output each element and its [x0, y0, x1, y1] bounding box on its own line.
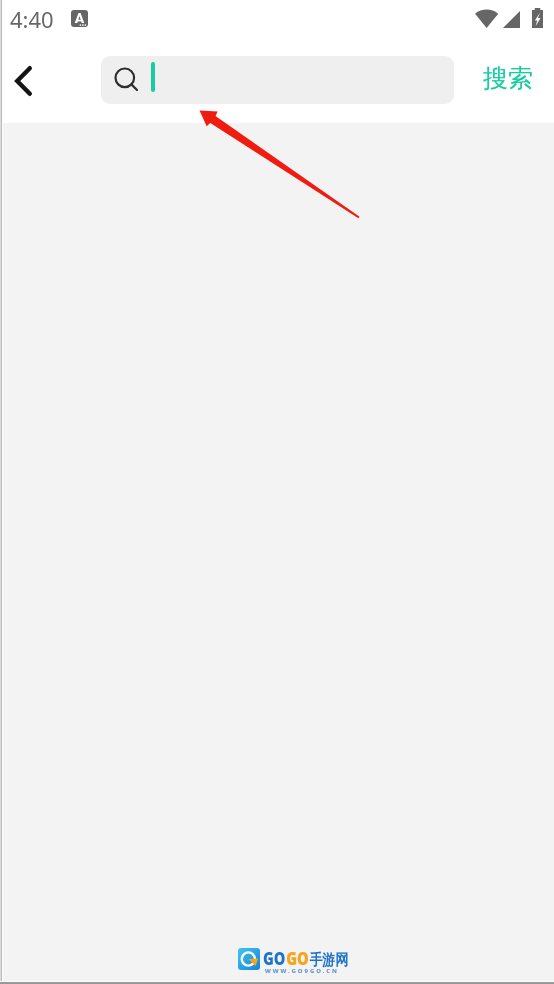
staticText: GO — [286, 947, 309, 970]
staticText: 4:40 — [10, 4, 54, 34]
staticText: 手游网 — [309, 951, 348, 970]
staticText: 搜索 — [483, 63, 533, 94]
staticText: GO — [263, 947, 286, 970]
button[interactable]: Back — [0, 53, 46, 109]
button[interactable]: 搜索 — [472, 54, 544, 102]
button[interactable] — [101, 56, 454, 104]
staticText: WWW.GO9GO.CN — [265, 967, 339, 975]
